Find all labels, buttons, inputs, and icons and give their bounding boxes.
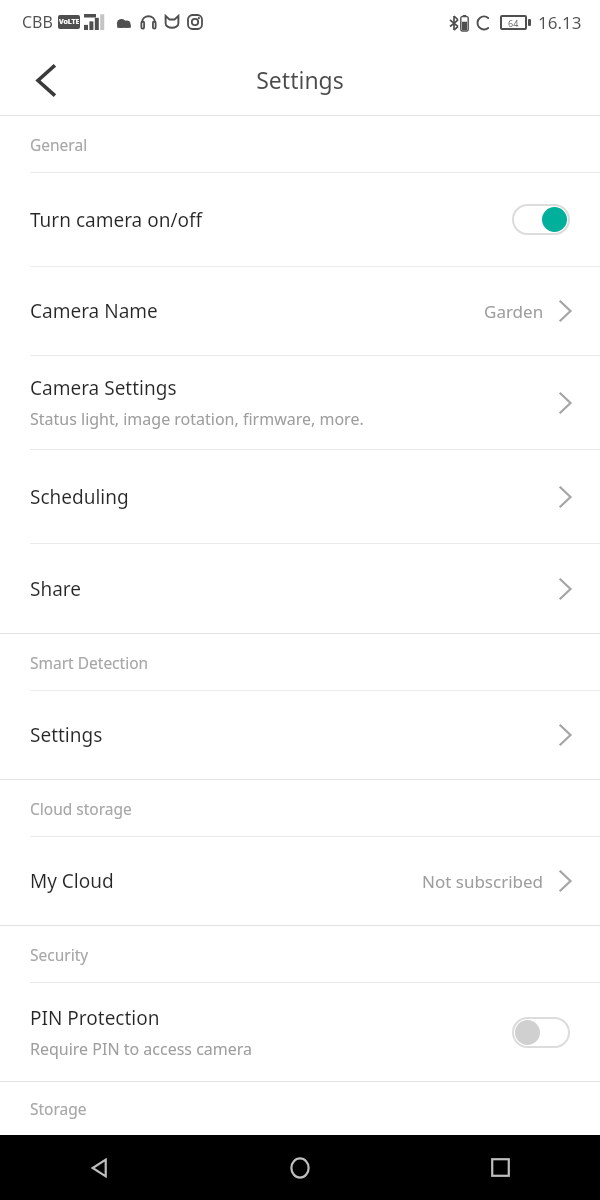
staticText: Share [30,576,82,602]
button[interactable]: Camera Name [0,267,600,355]
staticText: Smart Detection [30,652,149,673]
button[interactable]: Back [0,1135,200,1200]
staticText: Settings [30,722,103,748]
staticText: Not subscribed [422,870,544,893]
staticText: Scheduling [30,484,129,510]
button[interactable]: Back [20,54,72,106]
button[interactable]: PIN Protection [0,983,600,1081]
staticText: Camera Settings [30,375,177,401]
button[interactable]: Camera Settings [0,356,600,449]
button[interactable]: Home [200,1135,400,1200]
staticText: Status light, image rotation, firmware, … [30,408,364,430]
staticText: Cloud storage [30,798,132,819]
staticText: VoLTE [59,17,80,27]
staticText: General [30,134,88,155]
staticText: 64 [508,17,519,29]
button[interactable]: My Cloud [0,837,600,925]
staticText: Security [30,944,89,965]
staticText: Turn camera on/off [30,207,203,233]
button[interactable]: Share [0,544,600,633]
staticText: Garden [484,300,544,323]
button[interactable]: Scheduling [0,450,600,543]
staticText: PIN Protection [30,1005,160,1031]
staticText: Settings [256,64,344,95]
staticText: Camera Name [30,298,158,324]
button[interactable]: Recent apps [400,1135,600,1200]
staticText: Require PIN to access camera [30,1038,253,1060]
button[interactable]: Settings [0,691,600,779]
button[interactable]: Turn camera on/off [0,173,600,266]
staticText: CBB [22,11,53,33]
staticText: 16.13 [538,11,582,34]
staticText: Storage [30,1098,87,1119]
staticText: My Cloud [30,868,114,894]
